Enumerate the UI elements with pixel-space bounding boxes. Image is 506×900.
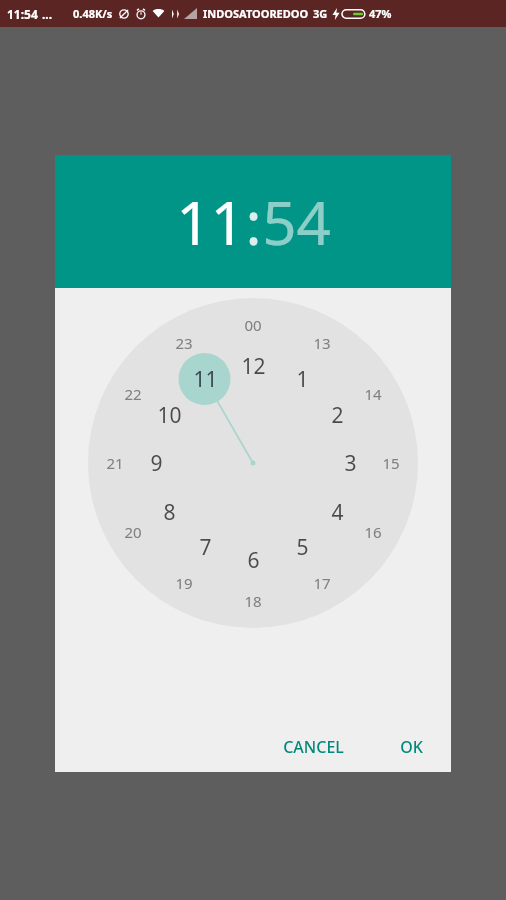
staticText: 47%: [369, 6, 392, 21]
staticText: CANCEL: [283, 736, 344, 758]
staticText: 20: [124, 522, 142, 542]
staticText: 19: [175, 573, 193, 593]
button[interactable]: CANCEL: [269, 728, 358, 766]
staticText: 3: [344, 449, 357, 478]
button[interactable]: 54: [262, 181, 331, 263]
staticText: 17: [313, 573, 331, 593]
button[interactable]: OK: [386, 728, 437, 766]
staticText: 21: [106, 453, 124, 473]
button[interactable]: 11: [176, 181, 245, 263]
staticText: 2: [331, 401, 344, 430]
staticText: 3G: [313, 6, 328, 21]
staticText: 4: [331, 498, 344, 527]
staticText: 12: [241, 352, 266, 381]
staticText: ...: [42, 6, 53, 22]
staticText: 1: [296, 365, 309, 394]
staticText: 22: [124, 384, 142, 404]
staticText: 5: [296, 533, 309, 562]
staticText: 18: [244, 591, 262, 611]
button[interactable]: Clock face, hour 11 selected: [88, 298, 418, 628]
staticText: OK: [400, 736, 423, 758]
staticText: 23: [175, 333, 193, 353]
staticText: 0.48K/s: [73, 6, 113, 21]
staticText: INDOSATOOREDOO: [203, 6, 309, 21]
staticText: 8: [163, 498, 176, 527]
staticText: 14: [364, 384, 382, 404]
staticText: 11: [176, 181, 245, 263]
staticText: 11:54: [7, 6, 38, 22]
staticText: 16: [364, 522, 382, 542]
staticText: 10: [157, 401, 182, 430]
staticText: 9: [150, 449, 163, 478]
staticText: 11: [193, 365, 218, 394]
staticText: 15: [382, 453, 400, 473]
staticText: :: [245, 181, 262, 263]
staticText: 00: [244, 315, 262, 335]
staticText: 6: [247, 546, 260, 575]
staticText: 7: [199, 533, 212, 562]
staticText: 54: [262, 181, 331, 263]
staticText: 13: [313, 333, 331, 353]
